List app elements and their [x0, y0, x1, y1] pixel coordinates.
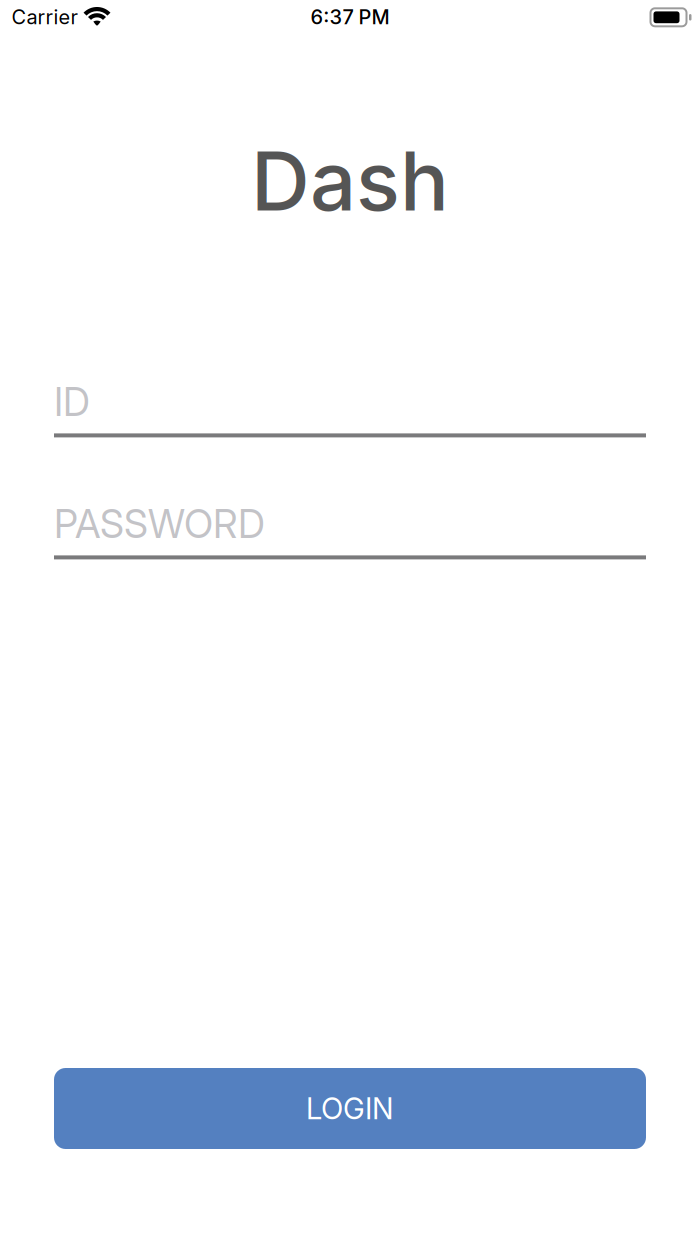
button[interactable]: PASSWORD	[54, 501, 646, 559]
staticText: 6:37 PM	[310, 5, 389, 29]
staticText: Dash	[251, 132, 449, 230]
staticText: Carrier	[11, 5, 77, 29]
button[interactable]: ID	[54, 379, 646, 437]
staticText: PASSWORD	[54, 501, 265, 547]
button[interactable]: LOGIN	[54, 1068, 646, 1149]
staticText: ID	[54, 379, 90, 425]
staticText: LOGIN	[306, 1091, 394, 1126]
